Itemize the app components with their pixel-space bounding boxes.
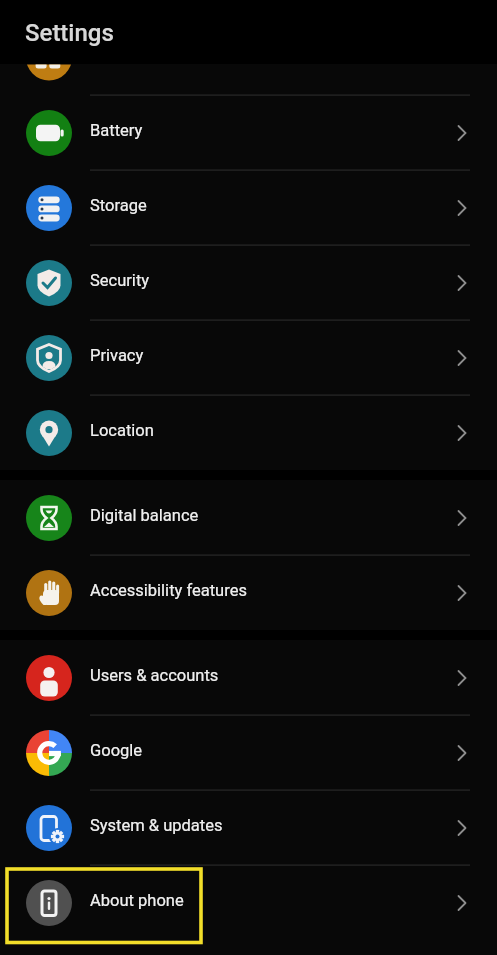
staticText: System & updates xyxy=(90,816,223,835)
staticText: Digital balance xyxy=(90,506,199,525)
staticText: Privacy xyxy=(90,346,144,365)
staticText: Battery xyxy=(90,121,143,140)
button[interactable]: Users & accounts xyxy=(0,640,497,715)
button[interactable]: System & updates xyxy=(0,790,497,865)
button[interactable]: About phone xyxy=(0,865,497,940)
button[interactable]: Accessibility features xyxy=(0,555,497,630)
staticText: Accessibility features xyxy=(90,581,247,600)
button[interactable]: Security xyxy=(0,245,497,320)
button[interactable]: Battery xyxy=(0,95,497,170)
staticText: Security xyxy=(90,271,150,290)
staticText: Google xyxy=(90,741,143,760)
button[interactable]: Location xyxy=(0,395,497,470)
button[interactable]: Digital balance xyxy=(0,480,497,555)
button[interactable]: Privacy xyxy=(0,320,497,395)
button[interactable]: Storage xyxy=(0,170,497,245)
staticText: About phone xyxy=(90,891,184,910)
button[interactable]: Google xyxy=(0,715,497,790)
staticText: Users & accounts xyxy=(90,666,219,685)
staticText: Location xyxy=(90,421,154,440)
staticText: Storage xyxy=(90,196,147,215)
staticText: Settings xyxy=(25,19,114,47)
